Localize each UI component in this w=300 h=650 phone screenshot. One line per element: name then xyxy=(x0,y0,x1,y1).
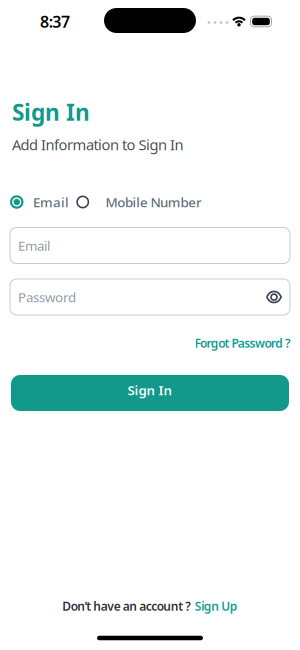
button[interactable]: Mobile Number xyxy=(76,193,202,211)
staticText: Forgot Password ? xyxy=(195,335,291,351)
button[interactable]: Forgot Password ? xyxy=(195,335,291,351)
staticText: Mobile Number xyxy=(105,193,202,211)
staticText: Password xyxy=(18,288,76,306)
button[interactable]: Sign Up xyxy=(195,598,238,614)
staticText: Sign In xyxy=(127,381,172,399)
button[interactable] xyxy=(266,291,282,303)
staticText: Sign In xyxy=(12,97,90,127)
staticText: Email xyxy=(18,237,50,254)
staticText: Sign Up xyxy=(195,598,238,614)
staticText: Add Information to Sign In xyxy=(12,135,183,154)
button[interactable]: Email xyxy=(10,193,69,211)
staticText: Email xyxy=(33,193,69,211)
button[interactable]: Sign In xyxy=(11,375,289,411)
staticText: Don’t have an account ? xyxy=(62,598,191,614)
staticText: 8:37 xyxy=(40,11,70,32)
